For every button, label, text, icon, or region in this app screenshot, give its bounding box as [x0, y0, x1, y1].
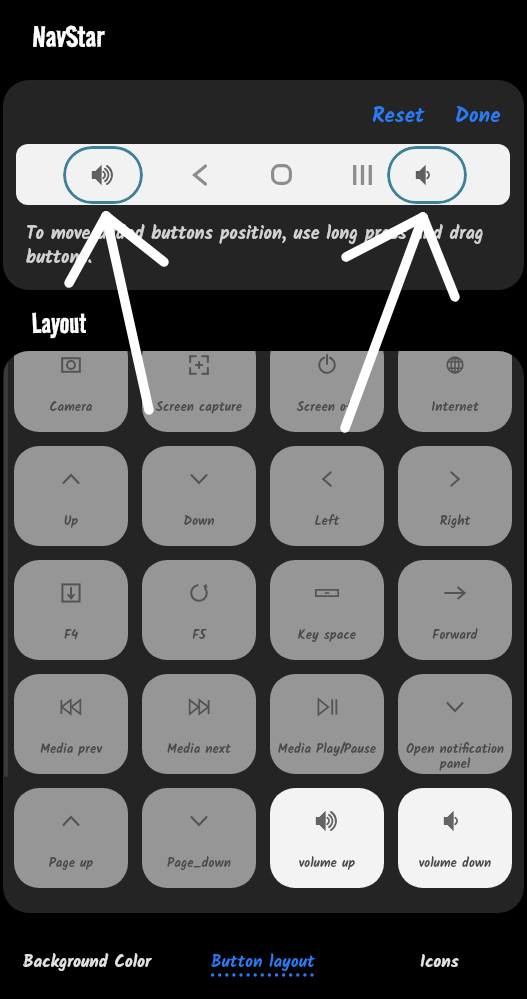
button[interactable]: Media next — [142, 674, 256, 774]
staticText: volume up — [273, 853, 381, 874]
button[interactable]: Volume down button — [387, 146, 467, 204]
staticText: Background Color — [23, 949, 152, 976]
staticText: Media prev — [17, 739, 125, 760]
button[interactable]: Camera — [14, 351, 128, 432]
button[interactable]: Back — [161, 144, 237, 205]
staticText: Down — [145, 511, 253, 532]
button[interactable]: Down — [142, 446, 256, 546]
button[interactable]: Internet — [398, 351, 512, 432]
staticText: Icons — [420, 949, 459, 976]
staticText: Up — [17, 511, 125, 532]
button[interactable]: Screen off — [270, 351, 384, 432]
staticText: Page up — [17, 853, 125, 874]
staticText: Reset — [372, 100, 425, 133]
button[interactable]: Media prev — [14, 674, 128, 774]
button[interactable]: Recent apps — [324, 144, 400, 205]
button[interactable]: Key space — [270, 560, 384, 660]
button[interactable]: Forward — [398, 560, 512, 660]
staticText: Internet — [401, 397, 509, 418]
staticText: Button layout — [211, 949, 315, 976]
staticText: Open notification panel — [401, 739, 509, 774]
button[interactable]: Up — [14, 446, 128, 546]
button[interactable]: Done — [447, 94, 509, 139]
staticText: Layout — [32, 306, 87, 341]
button[interactable]: volume down — [398, 788, 512, 888]
button[interactable]: Page_down — [142, 788, 256, 888]
button[interactable]: Open notification panel — [398, 674, 512, 774]
staticText: Media Play/Pause — [273, 739, 381, 760]
staticText: Media next — [145, 739, 253, 760]
button[interactable]: Right — [398, 446, 512, 546]
staticText: Screen capture — [145, 397, 253, 418]
button[interactable]: Background Color — [0, 920, 175, 999]
button[interactable]: Volume up button — [63, 146, 143, 204]
staticText: Done — [455, 100, 501, 133]
button[interactable]: Icons — [351, 920, 527, 999]
button[interactable]: F4 — [14, 560, 128, 660]
button[interactable]: Page up — [14, 788, 128, 888]
staticText: volume down — [401, 853, 509, 874]
button[interactable]: Left — [270, 446, 384, 546]
button[interactable]: Reset — [364, 94, 433, 139]
button[interactable]: Button layout — [175, 920, 351, 999]
button[interactable]: Home — [243, 144, 319, 205]
staticText: Right — [401, 511, 509, 532]
staticText: Screen off — [273, 397, 381, 418]
staticText: Page_down — [145, 853, 253, 874]
staticText: Camera — [17, 397, 125, 418]
staticText: NavStar — [32, 16, 105, 56]
staticText: To move added buttons position, use long… — [26, 220, 506, 273]
button[interactable]: Screen capture — [142, 351, 256, 432]
staticText: F4 — [17, 625, 125, 646]
staticText: Forward — [401, 625, 509, 646]
staticText: Key space — [273, 625, 381, 646]
staticText: F5 — [145, 625, 253, 646]
button[interactable]: volume up — [270, 788, 384, 888]
button[interactable]: Media Play/Pause — [270, 674, 384, 774]
button[interactable]: F5 — [142, 560, 256, 660]
staticText: Left — [273, 511, 381, 532]
